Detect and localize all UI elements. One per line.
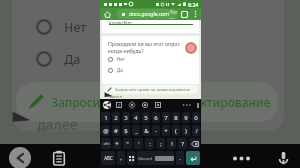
button[interactable]: . (176, 151, 184, 165)
staticText: @ (103, 127, 109, 135)
button[interactable]: Space (137, 151, 174, 165)
button[interactable]: ( (172, 125, 180, 136)
staticText: 4 (134, 114, 138, 122)
staticText: ) (185, 127, 187, 135)
staticText: 8:24 (188, 1, 199, 8)
button[interactable]: Keyboard tool (116, 102, 122, 108)
staticText: + (164, 127, 168, 135)
button[interactable]: More options (193, 10, 198, 18)
staticText: 8 (174, 114, 178, 122)
button[interactable]: , (117, 151, 125, 165)
button[interactable]: " (123, 138, 132, 149)
staticText: Да (117, 67, 123, 73)
staticText: ( (175, 127, 177, 135)
staticText: далее (110, 94, 122, 100)
button[interactable]: 5 (142, 112, 150, 123)
button[interactable]: Backspace (189, 138, 200, 149)
button[interactable]: Enter (186, 151, 200, 165)
button[interactable]: More (182, 102, 192, 108)
button[interactable]: ? (178, 138, 187, 149)
button[interactable]: Back (9, 147, 31, 168)
button[interactable]: : (145, 138, 154, 149)
staticText: 7 (164, 114, 168, 122)
button[interactable]: $ (122, 125, 130, 136)
staticText: Проходили ли вы этот опрос (108, 40, 181, 47)
button[interactable]: - (152, 125, 160, 136)
button[interactable]: / (192, 125, 200, 136)
staticText: : (149, 140, 151, 148)
staticText: далее (37, 115, 78, 134)
button[interactable]: More (232, 155, 249, 162)
staticText: Нет (117, 56, 125, 62)
staticText: /forms (169, 9, 178, 19)
button[interactable]: 4 (132, 112, 140, 123)
staticText: kinderfilm (109, 20, 133, 27)
button[interactable]: docs.google.com (117, 9, 178, 19)
staticText: # (114, 127, 118, 135)
staticText: / (195, 127, 198, 135)
button[interactable]: + (162, 125, 170, 136)
staticText: Gboard (138, 156, 153, 161)
button[interactable]: ) (182, 125, 190, 136)
staticText: ' (138, 140, 140, 148)
staticText: Нет (64, 19, 87, 36)
staticText: & (144, 127, 149, 135)
button[interactable]: 2 (112, 112, 120, 123)
staticText: , (120, 154, 122, 162)
button[interactable]: Keyboard tool (142, 102, 148, 108)
staticText: 5 (144, 114, 148, 122)
staticText: ? (181, 140, 184, 148)
button[interactable]: ' (134, 138, 143, 149)
button[interactable]: =\< (101, 138, 111, 149)
button[interactable]: @ (101, 125, 110, 136)
staticText: . (179, 154, 181, 162)
button[interactable] (16, 82, 278, 122)
staticText: * (115, 140, 119, 148)
staticText: ! (171, 140, 173, 148)
button[interactable]: Tabs (181, 11, 188, 18)
staticText: Запросить права на редактирование (115, 87, 191, 93)
button[interactable]: ABC (101, 151, 115, 165)
button[interactable]: Home (104, 11, 111, 18)
button[interactable]: Keyboard tool (155, 102, 161, 108)
button[interactable]: & (142, 125, 150, 136)
button[interactable]: 9 (182, 112, 190, 123)
staticText: " (126, 140, 129, 148)
staticText: _ (135, 127, 138, 135)
button[interactable]: Voice search (277, 151, 290, 166)
button[interactable]: ; (156, 138, 165, 149)
button[interactable]: 1 (101, 112, 110, 123)
staticText: ABC (104, 155, 113, 161)
button[interactable]: Google (103, 101, 111, 109)
button[interactable]: Запросить права на редактирование (103, 85, 198, 94)
button[interactable]: 8 (172, 112, 180, 123)
staticText: 6 (154, 114, 158, 122)
button[interactable]: _ (132, 125, 140, 136)
staticText: =\< (103, 141, 110, 146)
staticText: 3 (124, 114, 128, 122)
button[interactable]: Keyboard tool (129, 102, 135, 108)
button[interactable]: ! (167, 138, 176, 149)
button[interactable]: Emoji (127, 151, 135, 165)
button[interactable]: 6 (152, 112, 160, 123)
button[interactable]: 3 (122, 112, 130, 123)
button[interactable]: Да (108, 67, 123, 73)
button[interactable]: Recents (52, 150, 66, 166)
staticText: $ (124, 127, 128, 135)
staticText: 9 (184, 114, 188, 122)
button[interactable]: 0 (192, 112, 200, 123)
staticText: 0 (194, 114, 198, 122)
staticText: 2 (114, 114, 118, 122)
staticText: Запросить права на редактирование (51, 94, 271, 110)
button[interactable]: Нет (108, 56, 125, 62)
button[interactable]: * (113, 138, 121, 149)
staticText: когда-нибудь? (108, 47, 144, 54)
staticText: Да (64, 51, 81, 68)
staticText: docs.google.com (129, 11, 169, 18)
staticText: ; (160, 140, 162, 148)
button[interactable]: # (112, 125, 120, 136)
button[interactable]: 7 (162, 112, 170, 123)
staticText: 1 (104, 114, 108, 122)
staticText: - (155, 127, 157, 135)
